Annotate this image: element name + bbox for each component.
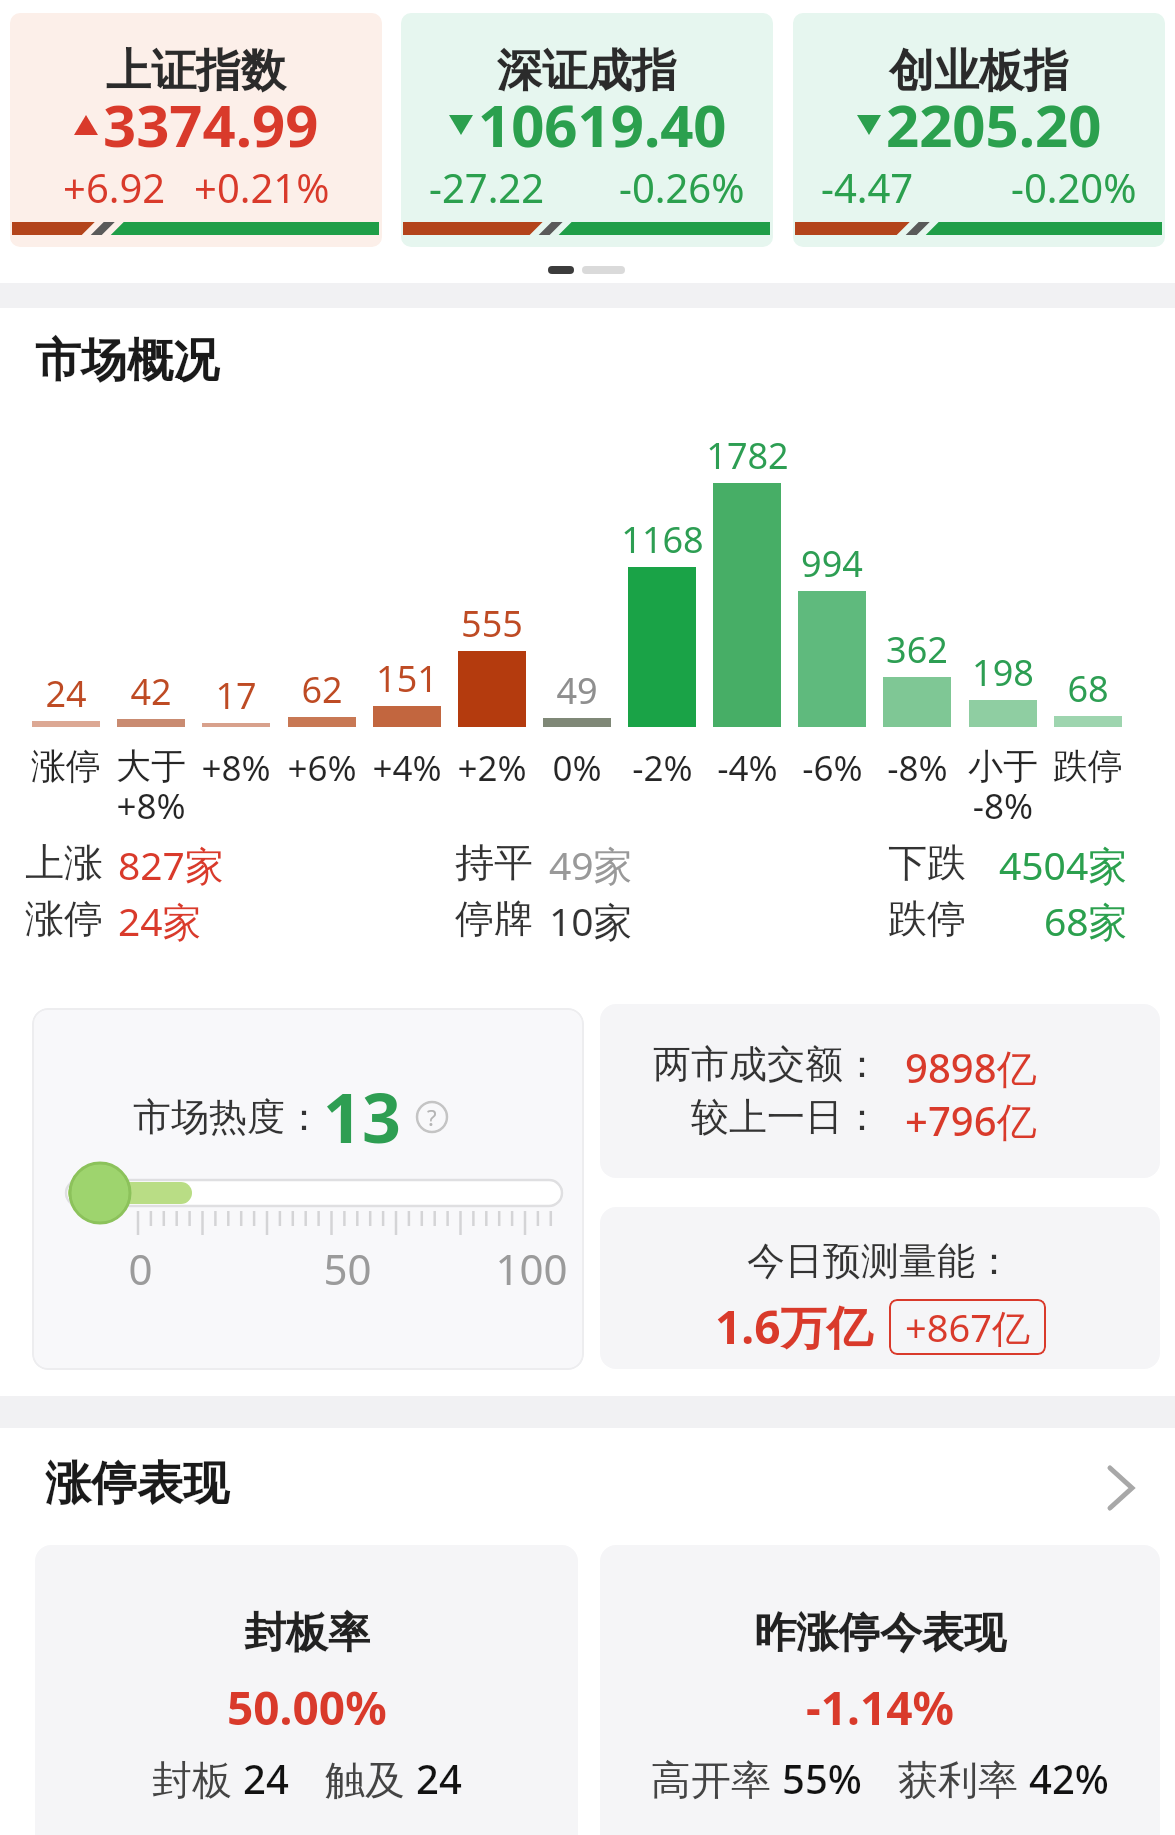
- staticText: 获利率: [898, 1751, 1029, 1806]
- staticText: 0%: [552, 744, 602, 792]
- staticText: 362: [886, 625, 948, 674]
- staticText: -6%: [802, 744, 863, 792]
- staticText: 62: [301, 665, 343, 714]
- staticText: +796亿: [905, 1093, 1037, 1148]
- button[interactable]: 创业板指: [793, 13, 1165, 247]
- staticText: 封板: [152, 1751, 243, 1806]
- staticText: 涨停: [25, 894, 103, 943]
- staticText: 42%: [1029, 1751, 1109, 1805]
- staticText: 24: [45, 669, 87, 718]
- staticText: 55%: [782, 1751, 862, 1805]
- staticText: 4504家: [999, 838, 1128, 891]
- staticText: 49: [556, 666, 598, 715]
- staticText: 827家: [118, 838, 224, 891]
- staticText: +867亿: [905, 1301, 1030, 1353]
- button[interactable]: 市场热度：: [32, 1008, 584, 1370]
- staticText: 触及: [325, 1751, 416, 1806]
- staticText: 151: [376, 654, 438, 703]
- staticText: 持平: [455, 838, 533, 887]
- staticText: +0.21%: [194, 160, 330, 214]
- staticText: 创业板指: [889, 43, 1069, 100]
- button[interactable]: 两市成交额：: [600, 1004, 1160, 1178]
- button[interactable]: 封板率: [35, 1545, 578, 1835]
- staticText: 50.00%: [227, 1676, 387, 1739]
- staticText: 2205.20: [886, 85, 1102, 164]
- staticText: 198: [972, 648, 1034, 697]
- staticText: 市场热度：: [133, 1093, 323, 1141]
- staticText: 13: [323, 1070, 401, 1163]
- staticText: 上证指数: [106, 43, 286, 100]
- staticText: 24: [243, 1751, 289, 1805]
- staticText: 17: [215, 671, 257, 720]
- staticText: 大于 +8%: [116, 744, 186, 830]
- staticText: +8%: [201, 744, 271, 792]
- staticText: 涨停: [31, 744, 101, 788]
- staticText: +6.92: [63, 160, 166, 214]
- staticText: 较上一日：: [691, 1093, 881, 1141]
- staticText: 跌停: [1053, 744, 1123, 788]
- staticText: 高开率: [651, 1751, 782, 1806]
- staticText: -27.22: [429, 160, 545, 214]
- staticText: 涨停表现: [45, 1455, 229, 1513]
- staticText: +6%: [287, 744, 357, 792]
- staticText: 9898亿: [905, 1040, 1037, 1095]
- staticText: 10家: [549, 894, 633, 947]
- staticText: 封板率: [244, 1607, 370, 1660]
- staticText: 小于 -8%: [968, 744, 1038, 830]
- staticText: 49家: [549, 838, 633, 891]
- staticText: 跌停: [888, 894, 966, 943]
- staticText: -4.47: [821, 160, 914, 214]
- staticText: 停牌: [455, 894, 533, 943]
- button[interactable]: 深证成指: [401, 13, 773, 247]
- staticText: 10619.40: [478, 85, 727, 164]
- staticText: 上涨: [25, 838, 103, 887]
- staticText: 1.6万亿: [715, 1295, 873, 1358]
- staticText: 100: [495, 1240, 568, 1297]
- staticText: 24: [416, 1751, 462, 1805]
- staticText: 今日预测量能：: [747, 1237, 1013, 1285]
- staticText: +4%: [372, 744, 442, 792]
- staticText: 市场概况: [35, 332, 219, 390]
- staticText: -0.20%: [1011, 160, 1137, 214]
- staticText: 两市成交额：: [653, 1040, 881, 1088]
- staticText: 68: [1067, 664, 1109, 713]
- staticText: -8%: [887, 744, 948, 792]
- button[interactable]: 昨涨停今表现: [600, 1545, 1160, 1835]
- staticText: -0.26%: [619, 160, 745, 214]
- staticText: 3374.99: [103, 85, 319, 164]
- staticText: 42: [130, 667, 172, 716]
- staticText: -1.14%: [806, 1676, 955, 1739]
- staticText: 0: [128, 1240, 153, 1297]
- staticText: 555: [461, 599, 523, 648]
- staticText: 1782: [706, 431, 789, 480]
- staticText: 1168: [621, 515, 704, 564]
- staticText: 昨涨停今表现: [754, 1607, 1006, 1660]
- staticText: -2%: [632, 744, 693, 792]
- staticText: 994: [801, 539, 863, 588]
- staticText: 68家: [1044, 894, 1128, 947]
- staticText: -4%: [717, 744, 778, 792]
- staticText: 深证成指: [497, 43, 677, 100]
- staticText: ?: [427, 1102, 437, 1132]
- button[interactable]: 今日预测量能：: [600, 1207, 1160, 1369]
- staticText: 下跌: [888, 838, 966, 887]
- button[interactable]: 上证指数: [10, 13, 382, 247]
- staticText: 50: [323, 1240, 372, 1297]
- staticText: 24家: [118, 894, 202, 947]
- staticText: +2%: [457, 744, 527, 792]
